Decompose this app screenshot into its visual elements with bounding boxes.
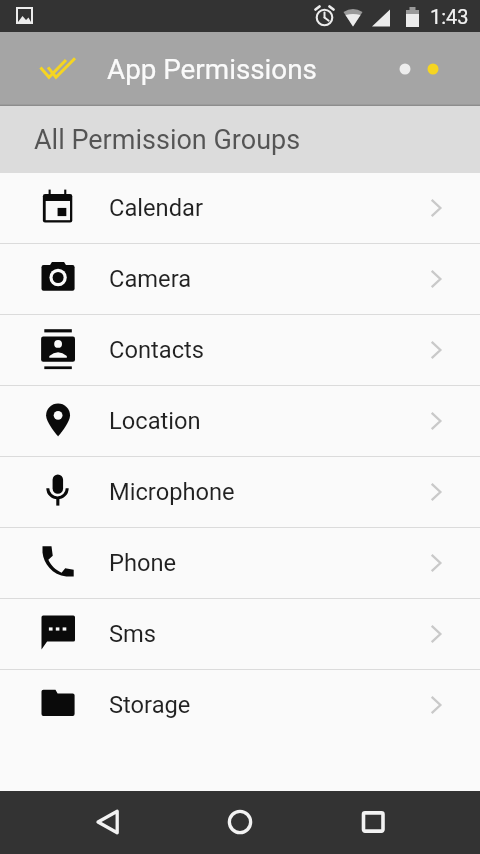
staticText: Calendar — [109, 194, 203, 222]
staticText: Phone — [109, 549, 177, 577]
button[interactable]: Location — [0, 386, 480, 456]
button[interactable]: Camera — [0, 244, 480, 314]
button[interactable]: Calendar — [0, 173, 480, 243]
staticText: Contacts — [109, 336, 205, 364]
button[interactable]: Contacts — [0, 315, 480, 385]
button[interactable]: Microphone — [0, 457, 480, 527]
staticText: Storage — [109, 691, 191, 719]
staticText: Sms — [109, 620, 157, 648]
staticText: Camera — [109, 265, 192, 293]
staticText: Location — [109, 407, 201, 435]
staticText: 1:43 — [430, 5, 469, 28]
staticText: All Permission Groups — [34, 124, 301, 156]
button[interactable]: Storage — [0, 670, 480, 740]
staticText: App Permissions — [107, 53, 317, 86]
staticText: Microphone — [109, 478, 235, 506]
button[interactable]: Sms — [0, 599, 480, 669]
button[interactable]: Phone — [0, 528, 480, 598]
